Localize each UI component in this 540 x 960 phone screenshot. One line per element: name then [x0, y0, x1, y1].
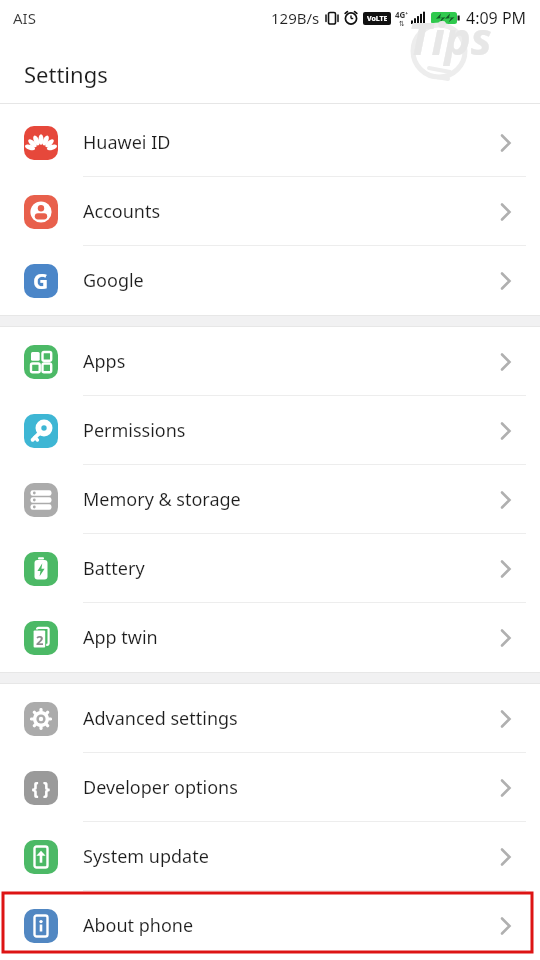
- staticText: Developer options: [83, 775, 238, 800]
- staticText: Memory & storage: [83, 487, 241, 512]
- button[interactable]: { }: [0, 753, 540, 822]
- staticText: Battery: [83, 556, 145, 581]
- staticText: Google: [83, 268, 144, 293]
- staticText: G: [33, 267, 49, 296]
- staticText: Settings: [24, 59, 108, 89]
- button[interactable]: G: [0, 246, 540, 315]
- button[interactable]: System update: [0, 822, 540, 891]
- staticText: VoLTE: [367, 14, 388, 24]
- staticText: System update: [83, 844, 209, 869]
- staticText: Apps: [83, 349, 126, 374]
- staticText: 4:09 PM: [466, 7, 527, 29]
- staticText: AIS: [13, 8, 36, 28]
- staticText: Advanced settings: [83, 706, 238, 731]
- button[interactable]: Memory & storage: [0, 465, 540, 534]
- button[interactable]: Battery: [0, 534, 540, 603]
- staticText: { }: [32, 777, 50, 800]
- button[interactable]: Accounts: [0, 177, 540, 246]
- staticText: 2: [36, 631, 44, 649]
- staticText: Huawei ID: [83, 130, 171, 155]
- button[interactable]: Permissions: [0, 396, 540, 465]
- button[interactable]: 2: [0, 603, 540, 672]
- staticText: 129B/s: [271, 8, 320, 28]
- staticText: Tips: [408, 8, 492, 68]
- staticText: About phone: [83, 913, 194, 938]
- button[interactable]: Huawei ID: [0, 108, 540, 177]
- staticText: ⇅: [399, 20, 405, 28]
- staticText: 4G⁺: [395, 9, 409, 20]
- button[interactable]: Advanced settings: [0, 684, 540, 753]
- staticText: App twin: [83, 625, 158, 650]
- staticText: Permissions: [83, 418, 186, 443]
- button[interactable]: Apps: [0, 327, 540, 396]
- button[interactable]: About phone: [0, 891, 540, 960]
- staticText: Accounts: [83, 199, 161, 224]
